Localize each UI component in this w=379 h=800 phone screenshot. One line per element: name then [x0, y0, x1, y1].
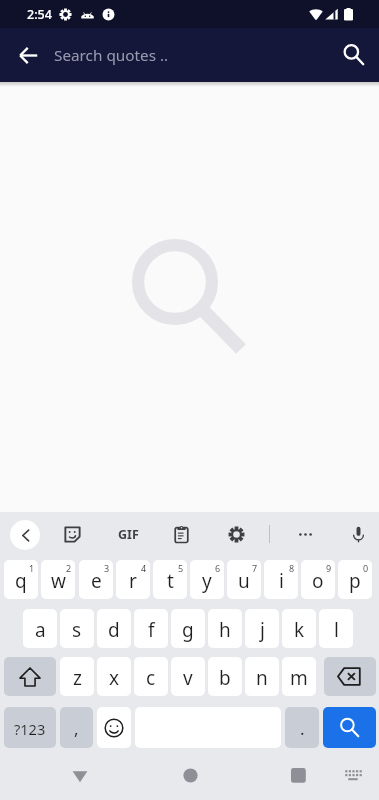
button[interactable]: Back	[0, 28, 54, 82]
button[interactable]: GIF	[113, 521, 143, 548]
staticText: 4	[141, 562, 147, 574]
button[interactable]: n	[245, 657, 279, 696]
button[interactable]: Clipboard	[168, 521, 195, 548]
button[interactable]: m	[282, 657, 316, 696]
button[interactable]: Switch keyboard	[334, 756, 372, 794]
staticText: 3	[104, 562, 110, 574]
button[interactable]: o	[301, 560, 335, 599]
button[interactable]: Recent apps	[279, 756, 317, 794]
staticText: l	[334, 617, 339, 643]
staticText: 7	[252, 562, 258, 574]
button[interactable]: y	[190, 560, 224, 599]
button[interactable]: Voice input	[345, 521, 372, 548]
staticText: e	[91, 568, 102, 594]
button[interactable]: z	[60, 657, 94, 696]
button[interactable]: c	[134, 657, 168, 696]
button[interactable]: l	[319, 609, 353, 648]
staticText: j	[260, 617, 265, 643]
staticText: 8	[289, 562, 295, 574]
button[interactable]: Shift	[4, 657, 56, 696]
staticText: x	[109, 665, 120, 691]
button[interactable]: k	[282, 609, 316, 648]
staticText: q	[15, 568, 27, 594]
button[interactable]: Emoji	[97, 707, 131, 748]
staticText: y	[202, 568, 212, 594]
button[interactable]: d	[97, 609, 131, 648]
staticText: d	[108, 617, 120, 643]
button[interactable]: x	[97, 657, 131, 696]
staticText: .	[300, 717, 305, 740]
staticText: p	[349, 568, 361, 594]
staticText: 2:54	[27, 6, 52, 23]
button[interactable]: More options	[292, 521, 319, 548]
button[interactable]: Settings	[223, 521, 250, 548]
button[interactable]: u	[227, 560, 261, 599]
staticText: z	[73, 665, 82, 691]
staticText: r	[129, 568, 137, 594]
button[interactable]: v	[171, 657, 205, 696]
button[interactable]: h	[208, 609, 242, 648]
button[interactable]: .	[285, 707, 319, 748]
button[interactable]: a	[23, 609, 57, 648]
button[interactable]: q	[4, 560, 38, 599]
staticText: 2	[66, 562, 72, 574]
staticText: 9	[326, 562, 332, 574]
staticText: o	[312, 568, 324, 594]
button[interactable]: t	[153, 560, 187, 599]
button[interactable]: Home	[171, 756, 209, 794]
button[interactable]: ?123	[4, 707, 56, 748]
staticText: ?123	[14, 719, 46, 739]
button[interactable]: ,	[60, 707, 93, 748]
staticText: 5	[178, 562, 184, 574]
staticText: v	[183, 665, 193, 691]
staticText: 6	[215, 562, 221, 574]
button[interactable]: g	[171, 609, 205, 648]
staticText: b	[219, 665, 231, 691]
staticText: i	[279, 568, 284, 594]
staticText: k	[294, 617, 305, 643]
button[interactable]: Backspace	[324, 657, 376, 696]
button[interactable]: Search	[327, 28, 379, 82]
staticText: GIF	[118, 526, 139, 543]
button[interactable]: Back	[61, 756, 99, 794]
staticText: g	[182, 617, 194, 643]
staticText: ,	[74, 717, 79, 740]
button[interactable]: w	[41, 560, 75, 599]
staticText: c	[146, 665, 156, 691]
button[interactable]: r	[116, 560, 150, 599]
button[interactable]: s	[60, 609, 94, 648]
staticText: t	[167, 568, 174, 594]
button[interactable]: e	[79, 560, 113, 599]
button[interactable]: i	[264, 560, 298, 599]
staticText: Search quotes ..	[54, 45, 327, 66]
button[interactable]: b	[208, 657, 242, 696]
staticText: s	[72, 617, 82, 643]
staticText: u	[238, 568, 250, 594]
button[interactable]: Back	[10, 520, 40, 550]
staticText: h	[219, 617, 231, 643]
staticText: f	[148, 617, 155, 643]
staticText: w	[51, 568, 66, 594]
staticText: n	[256, 665, 268, 691]
staticText: a	[35, 617, 46, 643]
staticText: 1	[29, 562, 35, 574]
button[interactable]: j	[245, 609, 279, 648]
staticText: m	[290, 665, 308, 691]
button[interactable]: Search	[323, 707, 376, 748]
staticText: 0	[363, 562, 369, 574]
button[interactable]: f	[134, 609, 168, 648]
button[interactable]: p	[338, 560, 372, 599]
button[interactable]: Stickers	[59, 521, 86, 548]
